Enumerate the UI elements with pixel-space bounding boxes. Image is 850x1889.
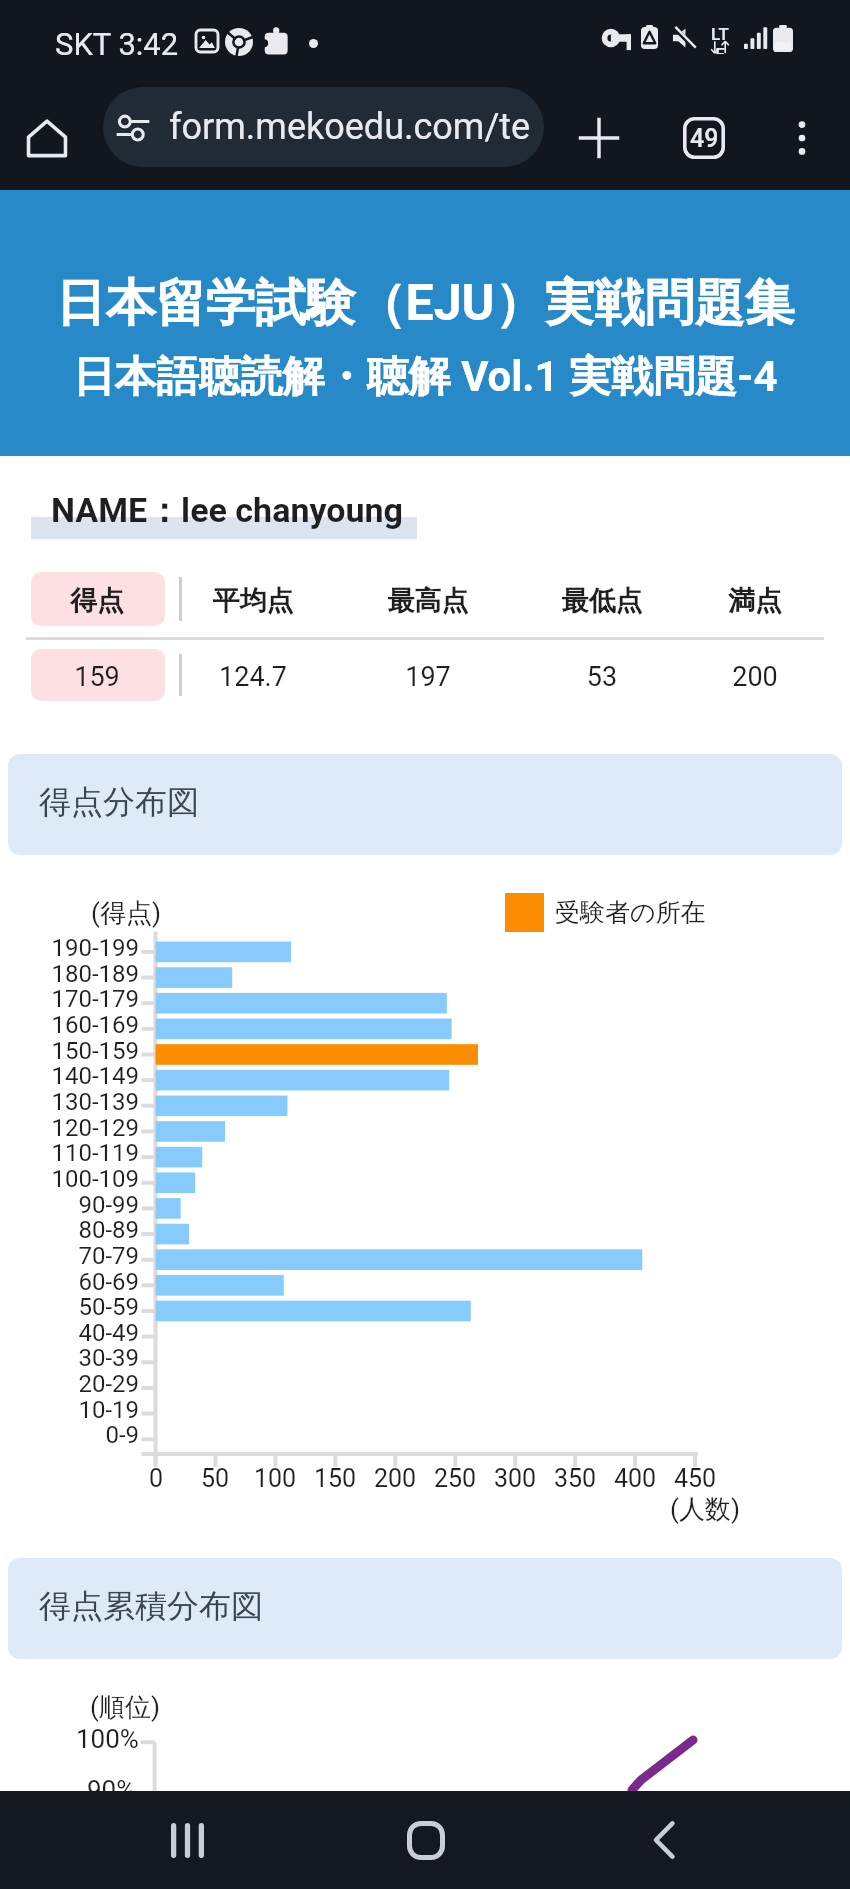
staticText: 平均点 [163, 584, 343, 618]
staticText: 0 [111, 1464, 201, 1493]
button[interactable]: 得点累積分布図 [8, 1558, 842, 1659]
staticText: 120-129 [0, 1114, 139, 1142]
button[interactable]: Home [378, 1791, 474, 1889]
staticText: 100 [230, 1464, 320, 1493]
staticText: 受験者の所在 [555, 897, 706, 928]
staticText: 250 [410, 1464, 500, 1493]
button[interactable]: Recent apps [139, 1791, 235, 1889]
staticText: 80-89 [0, 1216, 139, 1244]
staticText: 100-109 [0, 1165, 139, 1193]
button[interactable]: New tab [568, 107, 630, 169]
button[interactable]: Back [616, 1791, 712, 1889]
staticText: 得点分布図 [39, 782, 199, 822]
staticText: SKT 3:42 [55, 26, 179, 62]
staticText: 70-79 [0, 1242, 139, 1270]
staticText: NAME：lee chanyoung [51, 489, 403, 532]
staticText: 197 [338, 661, 518, 693]
staticText: 満点 [665, 584, 845, 618]
staticText: 0-9 [0, 1421, 139, 1449]
staticText: 最低点 [512, 584, 692, 618]
staticText: 130-139 [0, 1088, 139, 1116]
staticText: 124.7 [163, 661, 343, 693]
staticText: 90-99 [0, 1191, 139, 1219]
staticText: 110-119 [0, 1139, 139, 1167]
staticText: LTE [707, 24, 733, 54]
staticText: 最高点 [338, 584, 518, 618]
button[interactable]: 得点分布図 [8, 754, 842, 855]
staticText: 159 [7, 661, 187, 693]
staticText: 160-169 [0, 1011, 139, 1039]
staticText: 50 [170, 1464, 260, 1493]
staticText: 得点 [7, 584, 187, 618]
staticText: 20-29 [0, 1370, 139, 1398]
staticText: (得点) [91, 897, 161, 930]
staticText: 200 [350, 1464, 440, 1493]
staticText: 日本留学試験（EJU）実戦問題集 [0, 272, 850, 335]
staticText: 300 [470, 1464, 560, 1493]
staticText: 170-179 [0, 985, 139, 1013]
staticText: 40-49 [0, 1319, 139, 1347]
staticText: (人数) [670, 1493, 740, 1526]
staticText: 400 [590, 1464, 680, 1493]
staticText: 140-149 [0, 1062, 139, 1090]
button[interactable]: form.mekoedu.com/te [103, 87, 544, 167]
staticText: 180-189 [0, 960, 139, 988]
staticText: 49 [690, 124, 719, 153]
button[interactable]: More options [775, 111, 829, 165]
staticText: 150 [290, 1464, 380, 1493]
staticText: 200 [665, 661, 845, 693]
staticText: 150-159 [0, 1037, 139, 1065]
staticText: 53 [512, 661, 692, 693]
staticText: 30-39 [0, 1344, 139, 1372]
staticText: 350 [530, 1464, 620, 1493]
staticText: 60-69 [0, 1268, 139, 1296]
staticText: 100% [76, 1724, 139, 1754]
staticText: 190-199 [0, 934, 139, 962]
staticText: 90% [87, 1775, 136, 1805]
button[interactable]: Home [16, 107, 78, 169]
staticText: 10-19 [0, 1396, 139, 1424]
staticText: 得点累積分布図 [39, 1586, 263, 1626]
button[interactable]: Tabs [679, 113, 729, 163]
staticText: 450 [650, 1464, 740, 1493]
staticText: (順位) [90, 1691, 160, 1724]
staticText: form.mekoedu.com/te [169, 106, 531, 148]
staticText: 50-59 [0, 1293, 139, 1321]
staticText: 日本語聴読解・聴解 Vol.1 実戦問題-4 [0, 351, 850, 404]
